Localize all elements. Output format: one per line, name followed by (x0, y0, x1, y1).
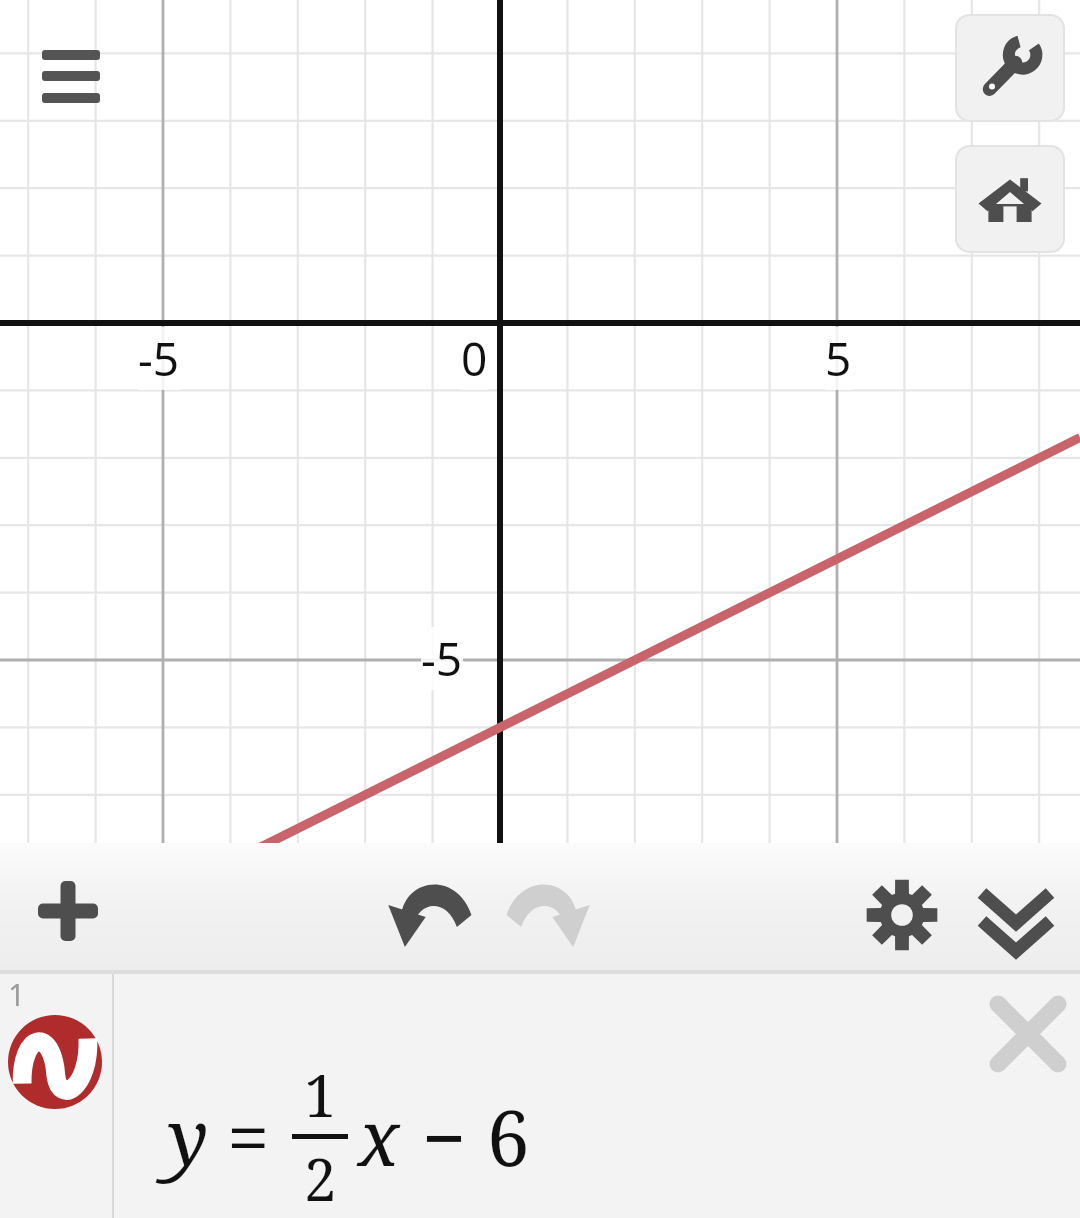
button[interactable]: Delete expression (982, 988, 1074, 1080)
staticText: 1 (8, 974, 26, 1015)
staticText: − (422, 1085, 467, 1189)
staticText: 1 (304, 1055, 337, 1134)
button[interactable]: Home (955, 145, 1065, 253)
button[interactable]: Menu (30, 34, 114, 112)
button[interactable]: Undo (382, 865, 486, 957)
button[interactable]: Redo (492, 865, 596, 957)
staticText: 5 (825, 327, 852, 390)
button[interactable]: Collapse (968, 867, 1064, 963)
staticText: 2 (304, 1139, 337, 1218)
button[interactable]: Add expression (20, 863, 116, 959)
button[interactable]: Expression 1 colour (0, 972, 1080, 1218)
staticText: 0 (461, 327, 488, 390)
staticText: y (168, 1085, 209, 1189)
button[interactable]: Graph settings (955, 14, 1065, 122)
staticText: = (227, 1085, 270, 1189)
staticText: -5 (138, 327, 180, 390)
staticText: 6 (487, 1085, 530, 1189)
staticText: -5 (421, 627, 463, 690)
button[interactable]: Settings (854, 867, 950, 963)
staticText: x (358, 1085, 400, 1189)
